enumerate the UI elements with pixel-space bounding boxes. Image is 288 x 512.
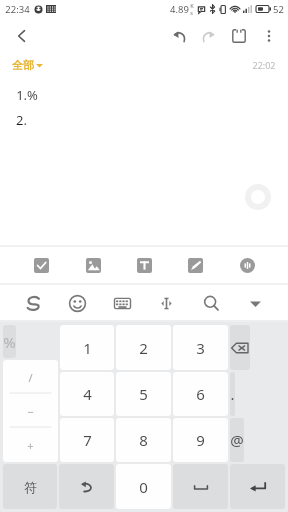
staticText: 0 [139,477,148,497]
staticText: s [190,9,193,16]
staticText: 7 [83,430,92,450]
button[interactable]: 全部 [12,58,43,72]
button[interactable]: 4 [60,372,114,416]
staticText: 1.% [16,86,38,104]
button[interactable]: 0 [116,464,171,509]
staticText: − [27,404,34,419]
staticText: 1 [83,338,92,358]
button[interactable]: / [3,360,58,394]
button[interactable]: Insert image [77,249,109,281]
button[interactable]: More options [254,21,284,51]
staticText: 全部 [12,58,34,72]
button[interactable]: Checklist [25,249,57,281]
button[interactable]: @ [230,418,244,462]
staticText: 符 [24,479,37,495]
button[interactable]: % [3,325,16,358]
staticText: 8 [139,430,148,450]
button[interactable]: 1 [60,325,114,370]
button[interactable]: Undo [164,21,194,51]
staticText: % [3,332,16,352]
button[interactable]: 2 [116,325,171,370]
staticText: . [230,384,235,404]
button[interactable]: Text format [128,249,160,281]
staticText: 4.89 [170,3,189,16]
button[interactable]: . [230,372,235,416]
staticText: @ [230,430,244,450]
button[interactable]: 6 [173,372,228,416]
staticText: 4 [83,384,92,404]
button[interactable]: Move cursor [150,287,182,319]
button[interactable]: 8 [116,418,171,462]
button[interactable]: 9 [173,418,228,462]
button[interactable]: Record audio [231,249,263,281]
button[interactable]: Space [173,464,228,509]
button[interactable]: Back [8,22,36,50]
button[interactable]: Undo [59,464,114,509]
button[interactable]: 5 [116,372,171,416]
button[interactable]: Save [224,21,254,51]
staticText: 2 [139,338,148,358]
button[interactable]: 符 [3,464,57,509]
button[interactable]: 7 [60,418,114,462]
button[interactable]: Draw [179,249,211,281]
button[interactable]: 3 [173,325,228,370]
staticText: 22:34 [5,3,30,16]
button[interactable]: Enter [230,464,285,509]
button[interactable]: Redo [194,21,224,51]
button[interactable]: Input method logo [17,287,49,319]
staticText: 5 [139,384,148,404]
staticText: 2. [16,111,27,129]
button[interactable]: Keyboard layout [106,287,138,319]
staticText: 6 [196,384,205,404]
staticText: 3 [196,338,205,358]
staticText: K [190,2,194,9]
staticText: / [28,370,33,385]
staticText: 9 [196,430,205,450]
button[interactable]: + [3,428,58,462]
staticText: 52 [273,3,284,16]
button[interactable]: Backspace [230,325,250,370]
button[interactable]: Emoji [61,287,93,319]
staticText: + [27,438,34,453]
button[interactable]: Search [195,287,227,319]
staticText: 22:02 [252,59,276,71]
button[interactable]: − [3,394,58,428]
button[interactable]: Hide keyboard [239,287,271,319]
